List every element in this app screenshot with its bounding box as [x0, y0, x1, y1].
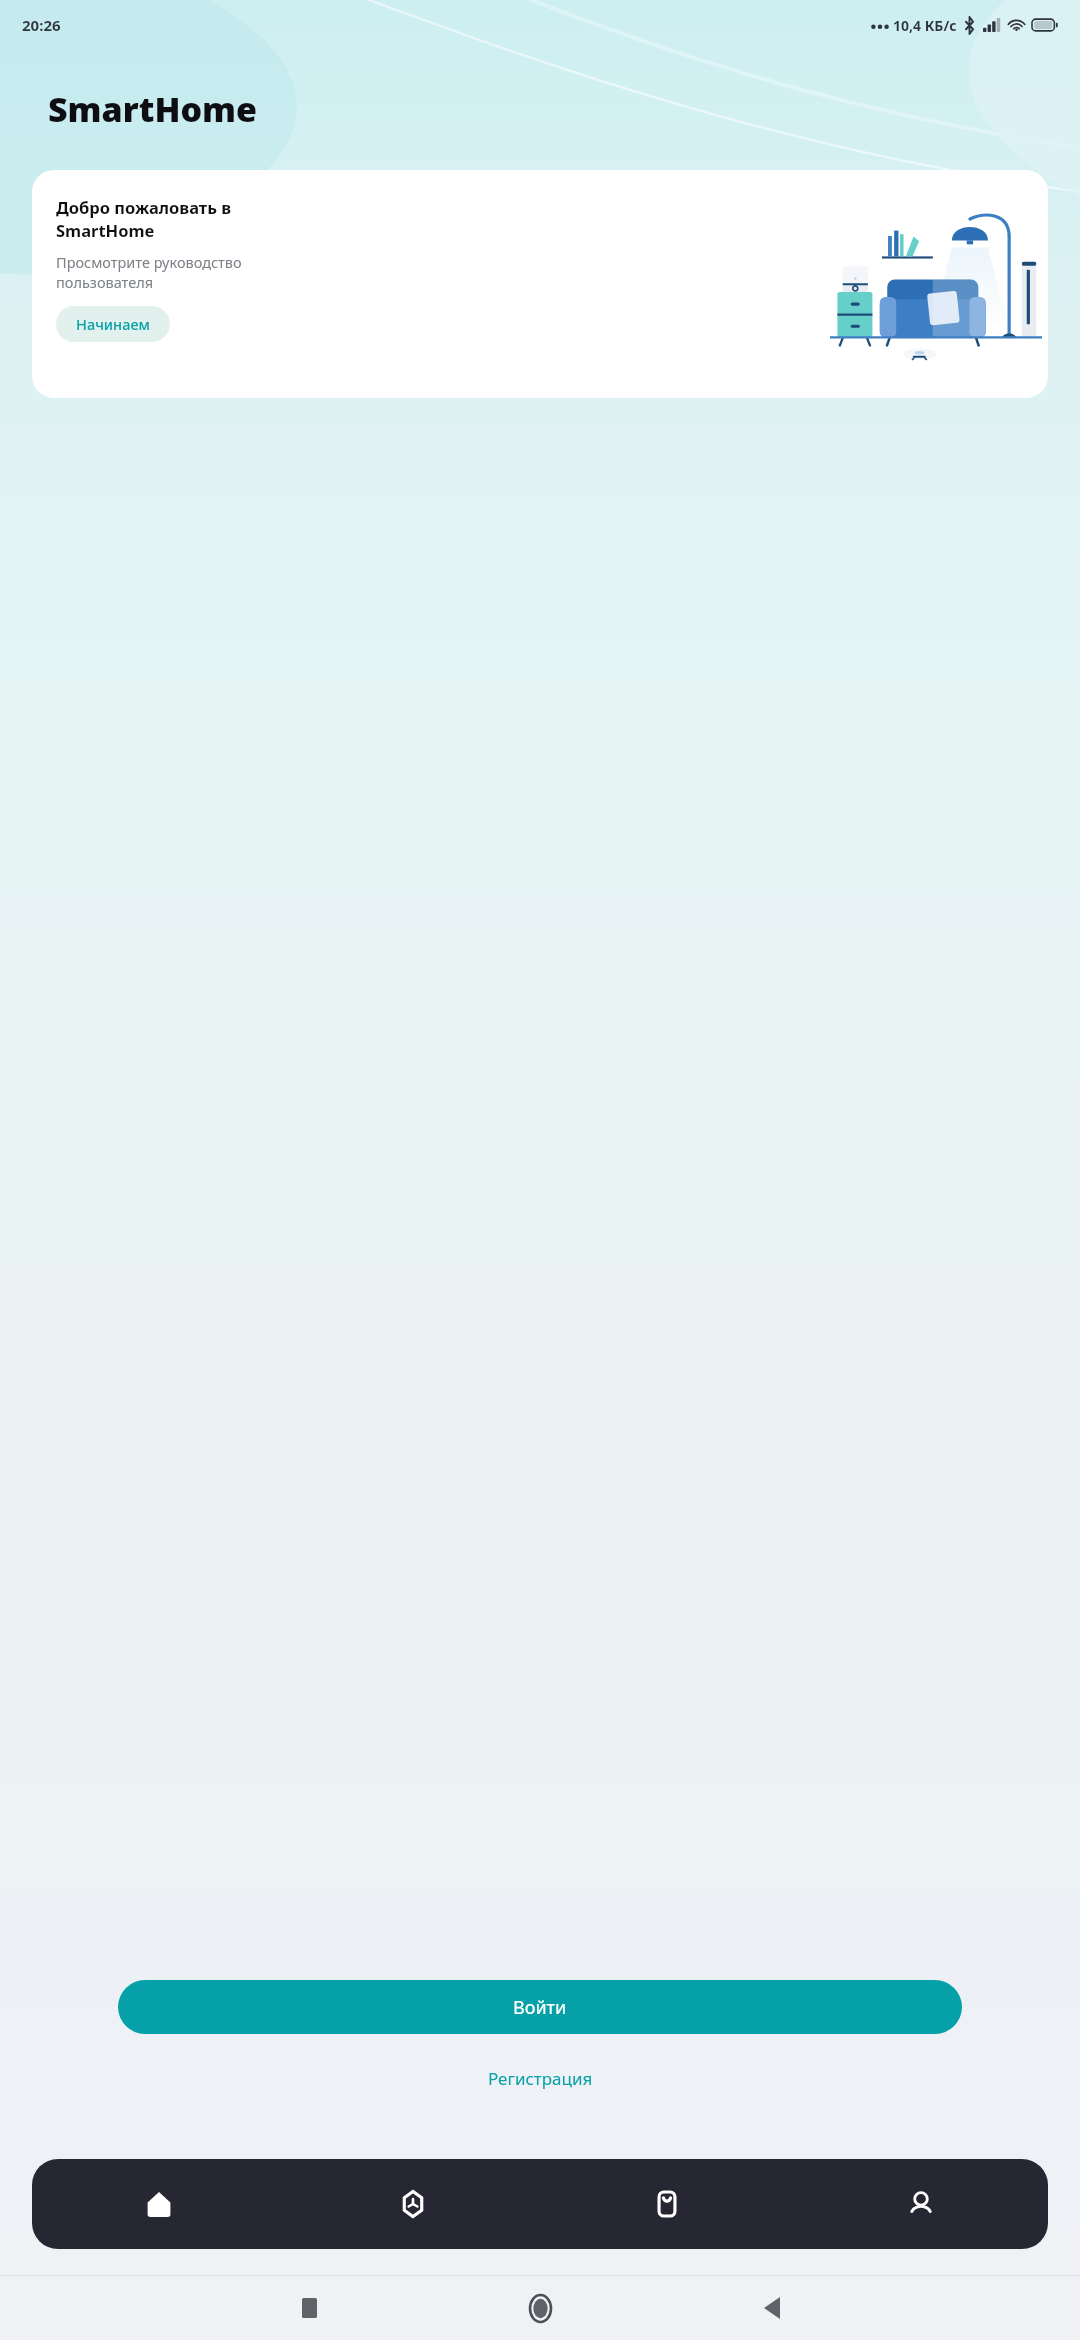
button[interactable]: Home	[425, 2276, 656, 2340]
button[interactable]: Back	[656, 2276, 887, 2340]
button[interactable]: Recents	[194, 2276, 425, 2340]
staticText: SmartHome	[48, 86, 258, 132]
staticText: Начинаем	[76, 314, 150, 334]
button[interactable]: Войти	[118, 1980, 962, 2034]
button[interactable]: Регистрация	[470, 2058, 611, 2099]
staticText: Добро пожаловать в SmartHome	[56, 196, 232, 242]
staticText: Войти	[513, 1995, 567, 2020]
staticText: Регистрация	[488, 2067, 593, 2090]
button[interactable]: Devices	[286, 2159, 540, 2249]
staticText: 10,4 КБ/с	[893, 16, 957, 35]
button[interactable]: Начинаем	[56, 306, 170, 342]
button[interactable]: Добро пожаловать в SmartHome	[32, 170, 1048, 398]
button[interactable]: Profile	[794, 2159, 1048, 2249]
button[interactable]: Home	[32, 2159, 286, 2249]
staticText: 20:26	[22, 15, 61, 35]
button[interactable]: Scenes	[540, 2159, 794, 2249]
staticText: Просмотрите руководство пользователя	[56, 252, 242, 292]
